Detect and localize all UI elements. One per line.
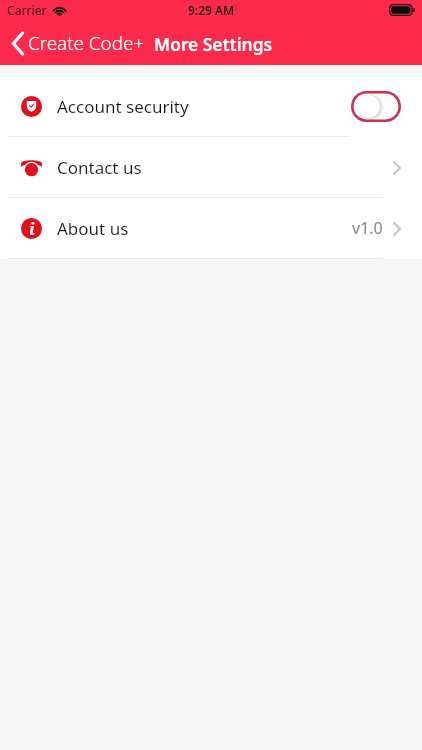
button[interactable]: Back [0, 25, 153, 61]
staticText: 9:29 AM [188, 2, 235, 18]
other: Open contact us [393, 162, 401, 174]
button[interactable]: Contact us [0, 137, 422, 197]
staticText: About us [57, 217, 129, 240]
other: Back [12, 33, 24, 54]
staticText: i [29, 218, 35, 239]
staticText: v1.0 [352, 217, 383, 239]
button[interactable]: i [0, 198, 422, 258]
staticText: Create Code+ [28, 30, 145, 56]
staticText: Carrier [7, 2, 47, 19]
button[interactable]: Account security toggle [351, 91, 401, 122]
button[interactable]: Account security [0, 77, 422, 136]
staticText: Account security [57, 95, 189, 118]
staticText: More Settings [154, 32, 273, 56]
staticText: Contact us [57, 156, 142, 179]
other: Open about us [393, 223, 401, 235]
